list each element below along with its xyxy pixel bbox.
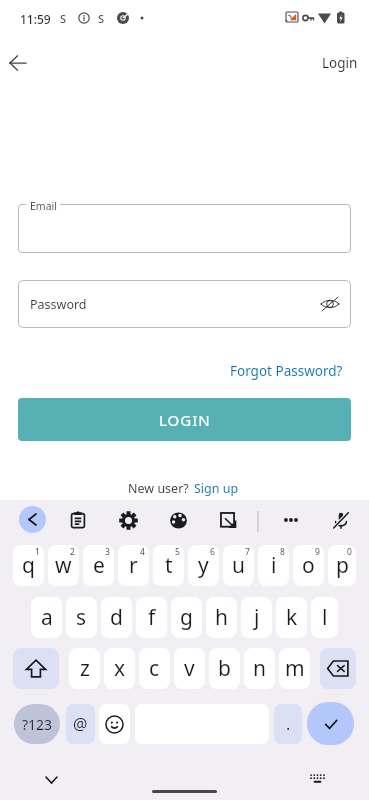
staticText: t (165, 551, 173, 580)
staticText: o (302, 551, 315, 580)
button[interactable]: n (244, 648, 275, 689)
button[interactable]: w (48, 545, 79, 586)
button[interactable]: h (206, 597, 237, 638)
button[interactable]: y (188, 545, 219, 586)
staticText: S (60, 11, 67, 26)
button[interactable]: Change keyboard (302, 763, 332, 793)
staticText: S (98, 11, 105, 26)
staticText: v (184, 654, 195, 683)
button[interactable]: l (311, 597, 338, 638)
staticText: 5 (175, 546, 180, 558)
staticText: i (271, 551, 277, 580)
button[interactable]: g (171, 597, 202, 638)
button[interactable]: c (139, 648, 170, 689)
staticText: 7 (245, 546, 250, 558)
button[interactable]: b (209, 648, 240, 689)
staticText: LOGIN (159, 410, 211, 430)
staticText: ?123 (22, 715, 53, 734)
staticText: z (80, 654, 90, 683)
button[interactable]: i (258, 545, 289, 586)
staticText: n (253, 654, 266, 683)
button[interactable]: v (174, 648, 205, 689)
staticText: l (322, 603, 328, 632)
staticText: a (41, 603, 53, 632)
staticText: 2 (70, 546, 75, 558)
staticText: 0 (347, 546, 352, 558)
button[interactable]: Keyboard tool (163, 505, 193, 535)
button[interactable]: Emoji (99, 704, 130, 744)
button[interactable]: Sign up (192, 478, 241, 499)
button[interactable]: Keyboard tool (326, 505, 356, 535)
staticText: f (148, 603, 156, 632)
button[interactable]: Keyboard tool (276, 505, 306, 535)
button[interactable]: . (274, 704, 302, 744)
staticText: j (254, 603, 260, 632)
staticText: b (218, 654, 231, 683)
staticText: g (180, 603, 193, 632)
button[interactable]: j (241, 597, 272, 638)
button[interactable]: t (153, 545, 184, 586)
staticText: 3 (105, 546, 110, 558)
staticText: @ (73, 713, 88, 735)
staticText: c (149, 654, 160, 683)
button[interactable]: k (276, 597, 307, 638)
button[interactable]: Enter (307, 702, 354, 745)
button[interactable]: Password (18, 280, 351, 328)
button[interactable]: Backspace (320, 648, 356, 689)
button[interactable]: Back (19, 506, 46, 533)
staticText: Sign up (194, 480, 239, 497)
staticText: q (22, 551, 35, 580)
staticText: r (129, 551, 138, 580)
button[interactable]: x (104, 648, 135, 689)
staticText: Password (30, 296, 87, 313)
button[interactable]: u (223, 545, 254, 586)
button[interactable]: d (101, 597, 132, 638)
staticText: 1 (35, 546, 40, 558)
button[interactable]: Keyboard tool (213, 505, 243, 535)
staticText: h (215, 603, 228, 632)
staticText: 11:59 (20, 11, 51, 27)
button[interactable]: Hide keyboard (36, 765, 66, 795)
button[interactable]: r (118, 545, 149, 586)
button[interactable]: Keyboard tool (113, 505, 143, 535)
button[interactable]: Keyboard tool (63, 505, 93, 535)
staticText: Login (322, 54, 358, 72)
staticText: 8 (280, 546, 285, 558)
button[interactable]: p (328, 545, 356, 586)
button[interactable]: Show password (314, 288, 346, 320)
button[interactable]: o (293, 545, 324, 586)
staticText: 4 (140, 546, 145, 558)
button[interactable]: LOGIN (18, 398, 351, 441)
staticText: x (114, 654, 126, 683)
staticText: 6 (210, 546, 215, 558)
button[interactable]: m (279, 648, 310, 689)
staticText: Forgot Password? (230, 362, 343, 380)
staticText: s (76, 603, 87, 632)
button[interactable]: f (136, 597, 167, 638)
button[interactable]: s (66, 597, 97, 638)
button[interactable]: Shift (13, 648, 59, 689)
staticText: e (93, 551, 105, 580)
button[interactable]: q (13, 545, 44, 586)
staticText: Email (30, 199, 57, 213)
button[interactable]: @ (66, 704, 95, 744)
button[interactable]: a (31, 597, 62, 638)
staticText: y (198, 551, 209, 580)
staticText: . (286, 713, 291, 735)
button[interactable]: e (83, 545, 114, 586)
button[interactable]: z (69, 648, 100, 689)
staticText: 9 (315, 546, 320, 558)
staticText: p (336, 551, 349, 580)
staticText: m (285, 654, 305, 683)
staticText: New user? (128, 480, 192, 497)
staticText: k (286, 603, 298, 632)
button[interactable]: Back (0, 45, 36, 81)
button[interactable]: ?123 (14, 704, 60, 744)
staticText: u (232, 551, 245, 580)
staticText: d (110, 603, 123, 632)
staticText: w (55, 551, 72, 580)
button[interactable]: Forgot Password? (224, 360, 349, 382)
